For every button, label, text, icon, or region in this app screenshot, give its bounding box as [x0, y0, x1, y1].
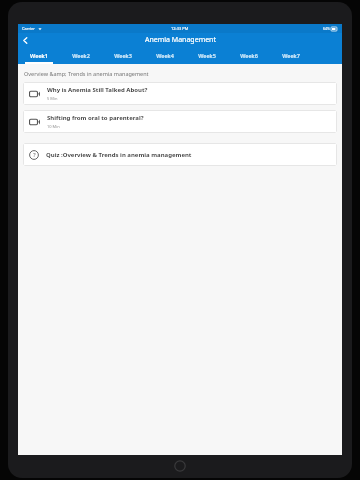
- button[interactable]: Week3: [102, 47, 144, 64]
- button[interactable]: Week4: [144, 47, 186, 64]
- button[interactable]: Week5: [186, 47, 228, 64]
- button[interactable]: Why is Anemia Still Talked About?: [23, 82, 337, 105]
- staticText: Week3: [114, 52, 132, 59]
- staticText: 10 Min: [47, 124, 60, 129]
- staticText: Week4: [156, 52, 174, 59]
- button[interactable]: Week1: [18, 47, 60, 64]
- button[interactable]: Week6: [228, 47, 270, 64]
- button[interactable]: Shifting from oral to parenteral?: [23, 110, 337, 133]
- staticText: ?: [33, 151, 36, 159]
- staticText: Week7: [282, 52, 300, 59]
- staticText: Quiz :Overview & Trends in anemia manage…: [46, 151, 192, 159]
- staticText: Week1: [30, 52, 48, 59]
- button[interactable]: Week7: [270, 47, 312, 64]
- button[interactable]: Week2: [60, 47, 102, 64]
- staticText: Week5: [198, 52, 216, 59]
- staticText: Week2: [72, 52, 90, 59]
- staticText: 64%: [323, 26, 330, 31]
- button[interactable]: ?: [23, 143, 337, 166]
- staticText: 12:33 PM: [171, 26, 189, 31]
- staticText: Overview &amp; Trends in anemia manageme…: [24, 70, 149, 77]
- button[interactable]: Back: [18, 33, 32, 47]
- staticText: Why is Anemia Still Talked About?: [47, 86, 148, 94]
- staticText: Week6: [240, 52, 258, 59]
- staticText: Anemia Management: [145, 35, 216, 45]
- staticText: Carrier: [22, 26, 36, 31]
- staticText: 5 Min: [47, 96, 58, 101]
- staticText: Shifting from oral to parenteral?: [47, 114, 144, 122]
